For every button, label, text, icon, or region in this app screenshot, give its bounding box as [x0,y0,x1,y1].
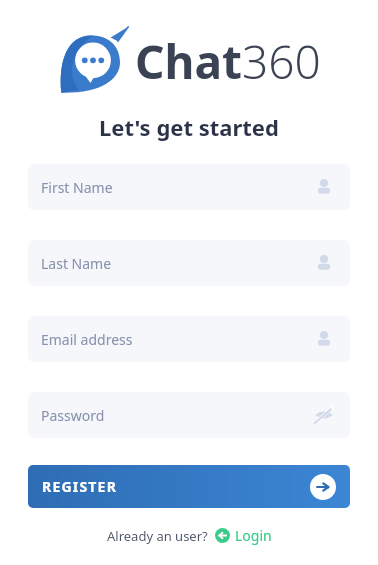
button[interactable]: Email address [28,316,350,362]
other: Chat360 logo [57,25,129,97]
staticText: Password [41,406,105,425]
staticText: Login [235,526,272,545]
staticText: 360 [242,30,321,93]
staticText: Let's get started [99,112,279,142]
staticText: Already an user? [107,527,208,545]
staticText: Email address [41,330,133,349]
button[interactable]: Login [215,526,272,545]
button[interactable]: First Name [28,164,350,210]
staticText: REGISTER [42,477,118,496]
button[interactable]: Last Name [28,240,350,286]
staticText: Last Name [41,254,112,273]
staticText: Chat [135,30,242,93]
staticText: First Name [41,178,113,197]
button[interactable]: Password [28,392,350,438]
button[interactable]: REGISTER [28,465,350,508]
